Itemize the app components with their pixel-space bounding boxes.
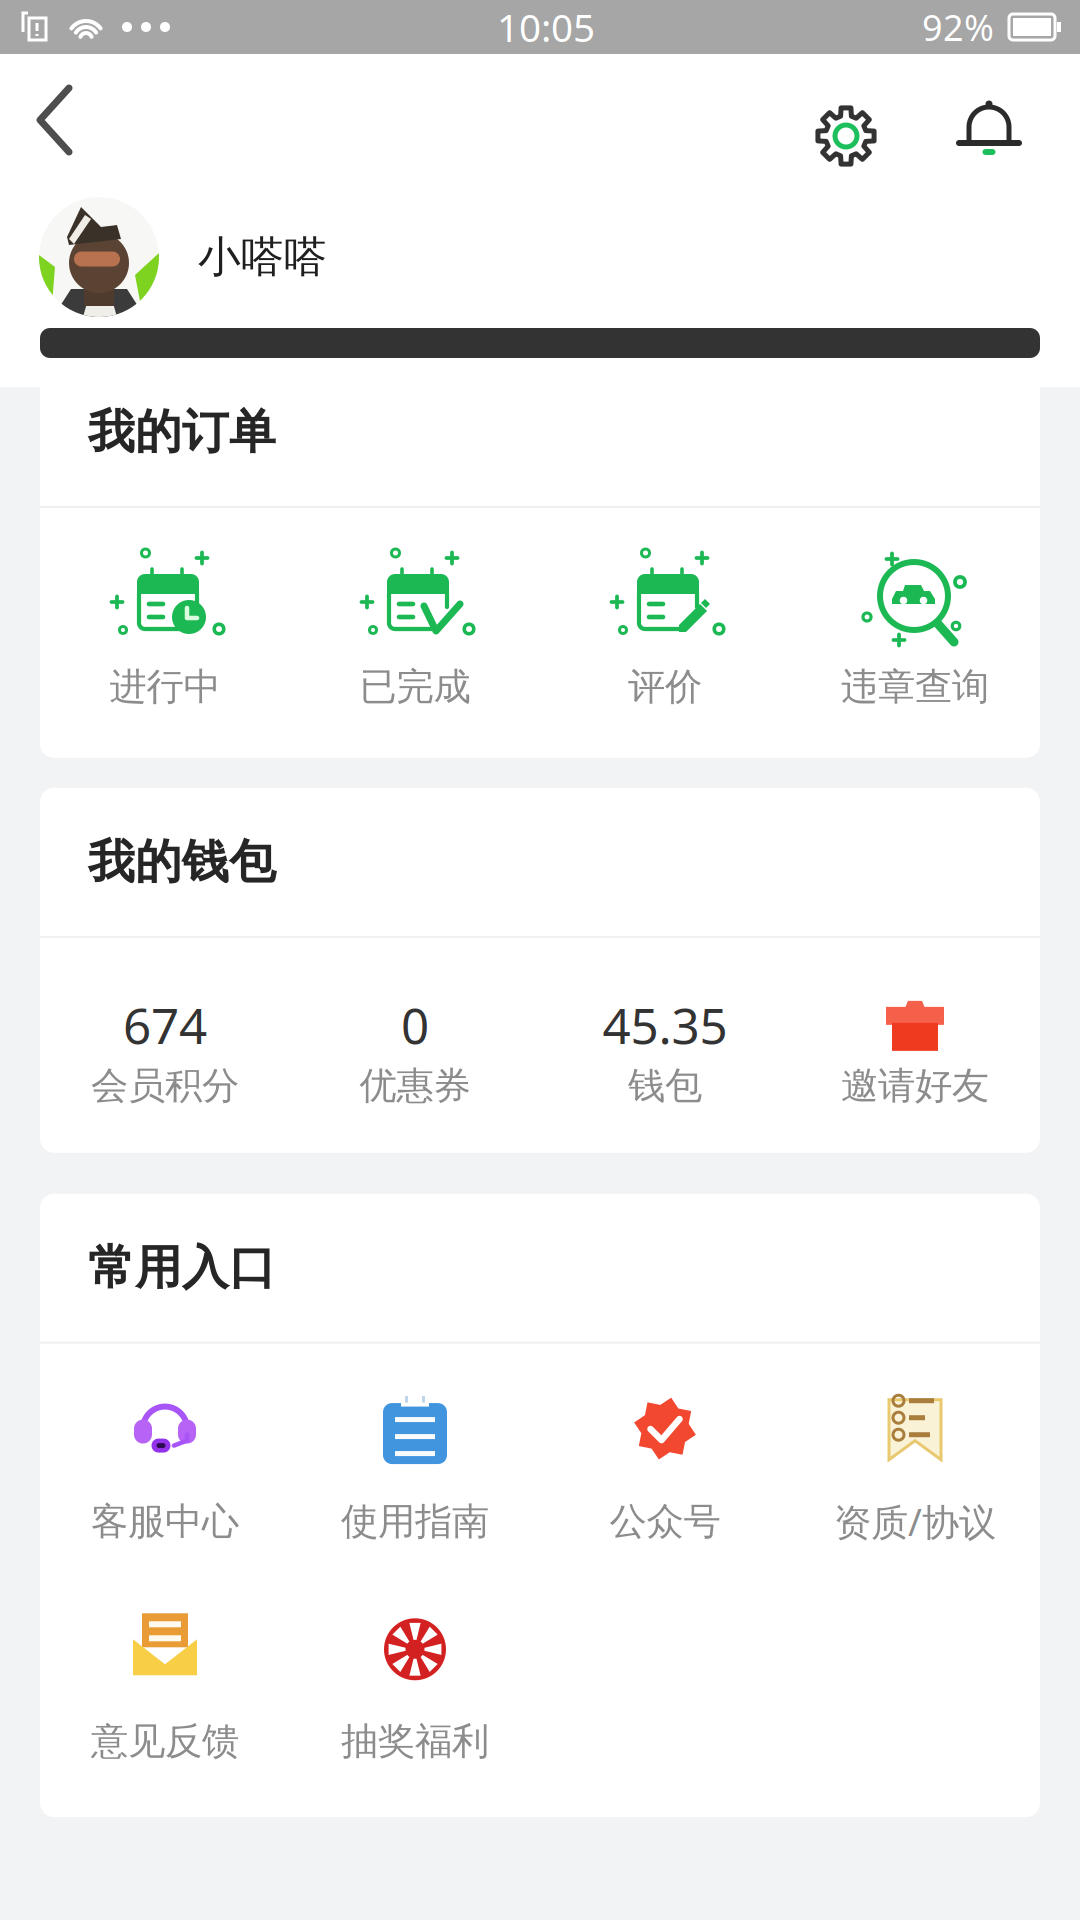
staticText: 会员积分: [91, 1063, 239, 1109]
staticText: 我的钱包: [88, 833, 276, 890]
button[interactable]: 0: [290, 994, 540, 1109]
staticText: 0: [401, 992, 429, 1058]
staticText: 常用入口: [88, 1239, 276, 1296]
button[interactable]: Settings: [800, 54, 892, 186]
button[interactable]: 客服中心: [40, 1388, 290, 1544]
button[interactable]: 邀请好友: [790, 994, 1040, 1109]
staticText: 45.35: [602, 992, 727, 1058]
button[interactable]: Notifications: [943, 54, 1035, 186]
staticText: 使用指南: [341, 1499, 489, 1544]
staticText: 已完成: [359, 664, 470, 710]
staticText: 邀请好友: [841, 1063, 989, 1109]
staticText: 优惠券: [359, 1063, 470, 1109]
staticText: 钱包: [628, 1063, 702, 1109]
button[interactable]: 使用指南: [290, 1388, 540, 1544]
staticText: 违章查询: [841, 664, 989, 710]
button[interactable]: 674: [40, 994, 290, 1109]
staticText: 进行中: [109, 664, 220, 710]
button[interactable]: 进行中: [40, 537, 290, 710]
staticText: 意见反馈: [91, 1718, 239, 1764]
staticText: 674: [123, 992, 207, 1058]
button[interactable]: 意见反馈: [40, 1607, 290, 1764]
staticText: 小嗒嗒: [198, 231, 327, 283]
staticText: 我的订单: [88, 403, 276, 461]
button[interactable]: 公众号: [540, 1388, 790, 1544]
button[interactable]: Back: [0, 54, 107, 186]
button[interactable]: 评价: [540, 537, 790, 710]
button[interactable]: 资质/协议: [790, 1386, 1040, 1546]
staticText: 10:05: [497, 1, 595, 53]
button[interactable]: 已完成: [290, 537, 540, 710]
button[interactable]: 抽奖福利: [290, 1607, 540, 1764]
staticText: 抽奖福利: [341, 1718, 489, 1764]
staticText: 资质/协议: [834, 1497, 996, 1546]
staticText: 客服中心: [91, 1499, 239, 1544]
staticText: 92%: [922, 3, 994, 51]
button[interactable]: 违章查询: [790, 537, 1040, 710]
staticText: 公众号: [609, 1499, 720, 1544]
button[interactable]: 45.35: [540, 994, 790, 1109]
staticText: 评价: [628, 664, 702, 710]
